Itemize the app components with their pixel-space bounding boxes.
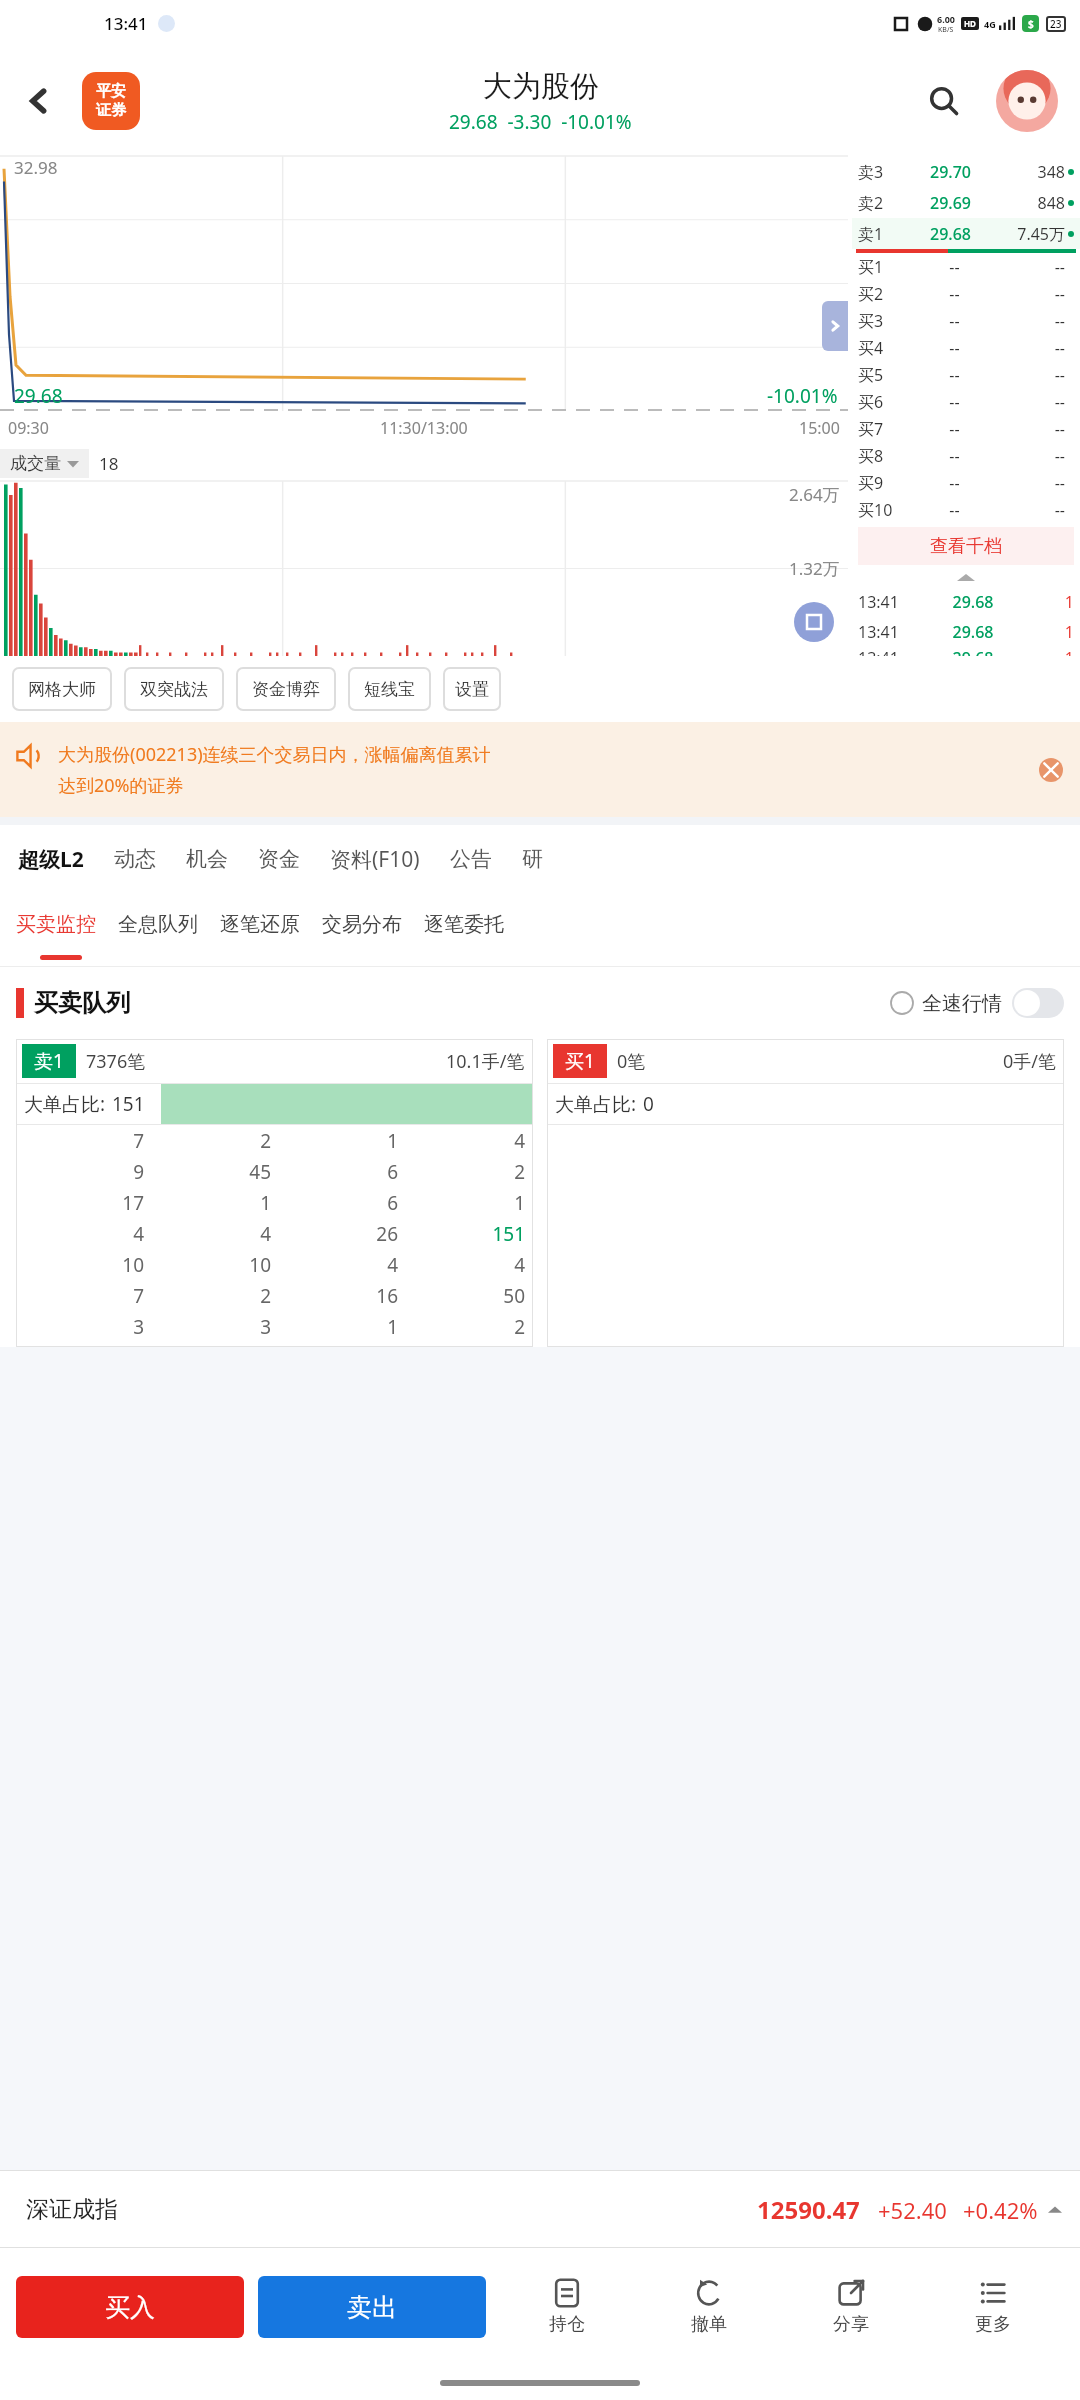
staticText: 买卖监控	[16, 912, 96, 937]
button[interactable]: 13:41	[858, 587, 1074, 617]
staticText: --	[906, 310, 1003, 332]
button[interactable]: 查看千档	[858, 527, 1074, 565]
button[interactable]: 分享	[780, 2272, 922, 2342]
staticText: 13:41	[858, 647, 914, 656]
button[interactable]: 逐笔还原	[220, 912, 300, 937]
button[interactable]: 买5	[852, 361, 1080, 388]
staticText: 2	[398, 1314, 525, 1340]
button[interactable]: 资料(F10)	[328, 845, 422, 874]
staticText: 16	[271, 1283, 398, 1309]
button[interactable]: 网格大师	[12, 667, 112, 711]
button[interactable]: 交易分布	[322, 912, 402, 937]
staticText: 6	[271, 1190, 398, 1216]
staticText: 9	[16, 1159, 144, 1185]
staticText: 买卖队列	[34, 988, 130, 1018]
button[interactable]: 动态	[112, 846, 158, 872]
button[interactable]: 卖1	[852, 218, 1080, 249]
staticText: --	[1003, 418, 1065, 440]
button[interactable]: Expand	[822, 301, 848, 351]
staticText: 3	[16, 1314, 144, 1340]
staticText: 848	[1003, 192, 1065, 214]
button[interactable]: 大为股份(002213)连续三个交易日内，涨幅偏离值累计	[0, 722, 1080, 817]
button[interactable]: 买卖监控	[16, 912, 96, 937]
button[interactable]: 买8	[852, 442, 1080, 469]
button[interactable]: Toggle full speed quotes	[1012, 988, 1064, 1018]
button[interactable]: Back	[10, 72, 68, 130]
button[interactable]: 全息队列	[118, 912, 198, 937]
staticText: 买2	[858, 283, 906, 305]
staticText: 4	[398, 1128, 525, 1154]
button[interactable]: 卖3	[852, 156, 1080, 187]
staticText: 网格大师	[28, 679, 96, 700]
button[interactable]: 超级L2	[16, 845, 86, 874]
staticText: --	[906, 418, 1003, 440]
staticText: 10.1手/笔	[446, 1049, 525, 1074]
button[interactable]: 资金	[256, 846, 302, 872]
button[interactable]: 13:41	[858, 647, 1074, 656]
staticText: 买5	[858, 364, 906, 386]
button[interactable]: 机会	[184, 846, 230, 872]
staticText: 卖1	[34, 1048, 64, 1074]
button[interactable]: Profile	[996, 70, 1058, 132]
staticText: 平安	[96, 82, 126, 101]
staticText: 1	[144, 1190, 271, 1216]
button[interactable]: Close notice	[1034, 753, 1068, 787]
staticText: 10	[144, 1252, 271, 1278]
staticText: 10	[16, 1252, 144, 1278]
staticText: 证券	[96, 101, 126, 120]
button[interactable]: Search	[916, 73, 972, 129]
staticText: 1	[1032, 621, 1074, 643]
staticText: --	[1003, 364, 1065, 386]
button[interactable]: 买3	[852, 307, 1080, 334]
staticText: 持仓	[549, 2313, 585, 2336]
button[interactable]: 更多	[922, 2272, 1064, 2342]
button[interactable]: 短线宝	[348, 667, 431, 711]
staticText: 29.68	[914, 591, 1032, 613]
staticText: 3	[144, 1314, 271, 1340]
staticText: 大为股份(002213)连续三个交易日内，涨幅偏离值累计	[58, 742, 491, 767]
staticText: 买9	[858, 472, 906, 494]
staticText: 13:41	[858, 591, 914, 613]
staticText: --	[906, 445, 1003, 467]
button[interactable]: 卖出	[258, 2276, 486, 2338]
staticText: 买入	[105, 2292, 155, 2323]
staticText: $	[1028, 17, 1034, 31]
button[interactable]: 买9	[852, 469, 1080, 496]
staticText: 设置	[455, 679, 489, 700]
button[interactable]: 13:41	[858, 617, 1074, 647]
button[interactable]: Fullscreen	[794, 602, 834, 642]
button[interactable]: Ping An Securities	[82, 72, 140, 130]
button[interactable]: 卖2	[852, 187, 1080, 218]
staticText: 15:00	[799, 417, 840, 439]
staticText: -10.01%	[767, 383, 838, 409]
button[interactable]: 成交量	[10, 453, 79, 474]
button[interactable]: 买入	[16, 2276, 244, 2338]
staticText: 全速行情	[922, 991, 1002, 1016]
button[interactable]: 双突战法	[124, 667, 224, 711]
staticText: 29.70	[898, 161, 1003, 183]
button[interactable]: 买6	[852, 388, 1080, 415]
staticText: 卖2	[858, 192, 898, 214]
button[interactable]: 设置	[443, 667, 501, 711]
staticText: 26	[271, 1221, 398, 1247]
button[interactable]: 买2	[852, 280, 1080, 307]
staticText: 29.68	[898, 223, 1003, 245]
button[interactable]: 研	[520, 846, 545, 872]
button[interactable]: 买10	[852, 496, 1080, 523]
button[interactable]: 逐笔委托	[424, 912, 504, 937]
staticText: 0手/笔	[1003, 1049, 1056, 1074]
staticText: --	[1003, 256, 1065, 278]
staticText: 超级L2	[18, 845, 84, 874]
staticText: 18	[99, 452, 119, 475]
staticText: 29.68	[14, 383, 63, 409]
staticText: 逐笔还原	[220, 912, 300, 937]
button[interactable]: 持仓	[496, 2272, 638, 2342]
button[interactable]: 买1	[852, 253, 1080, 280]
button[interactable]: 公告	[448, 846, 494, 872]
button[interactable]: 资金博弈	[236, 667, 336, 711]
button[interactable]: 撤单	[638, 2272, 780, 2342]
button[interactable]: 买7	[852, 415, 1080, 442]
staticText: 卖3	[858, 161, 898, 183]
staticText: 大单占比:	[24, 1091, 106, 1117]
button[interactable]: 买4	[852, 334, 1080, 361]
